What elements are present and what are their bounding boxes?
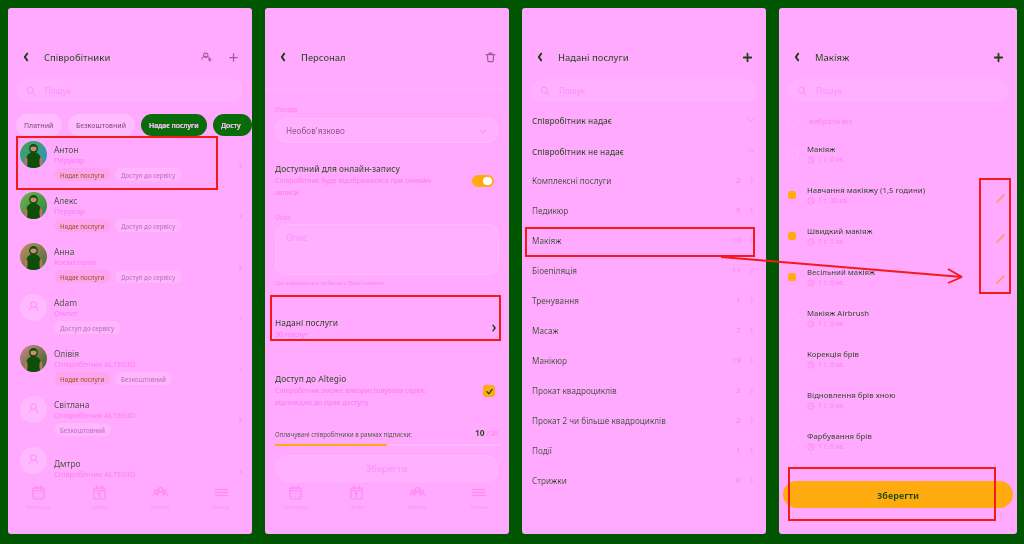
staticText: 0	[736, 475, 741, 486]
button[interactable]: Комплексні послуги	[522, 165, 766, 195]
button[interactable]: Back	[788, 48, 806, 66]
staticText: 1 г. 0 хв.	[818, 155, 845, 164]
button[interactable]: Back	[17, 48, 35, 66]
button[interactable]: Графік	[69, 477, 130, 534]
button[interactable]: Макіяж	[779, 133, 1017, 174]
button[interactable]: Олівія	[8, 344, 252, 395]
button[interactable]: Фарбування брів	[779, 420, 1017, 461]
button[interactable]: Delete	[480, 47, 500, 67]
staticText: Посада	[275, 105, 298, 114]
staticText: Надає послуги	[60, 222, 105, 230]
button[interactable]: Надає послуги	[141, 114, 207, 136]
button[interactable]: Педикюр	[522, 195, 766, 225]
button[interactable]: Календар	[8, 477, 69, 534]
button[interactable]	[472, 175, 494, 187]
button[interactable]: Edit	[994, 273, 1007, 286]
button[interactable]: Співробітник надає	[522, 108, 766, 132]
staticText: Весільний макіяж	[807, 267, 876, 277]
button[interactable]: Edit	[994, 232, 1007, 245]
button[interactable]: Add	[223, 47, 243, 67]
staticText: Події	[532, 445, 736, 456]
staticText: Співробітник ALTEGIO	[54, 359, 136, 369]
button[interactable]: Дмтро	[8, 446, 252, 497]
staticText: Графік	[349, 504, 365, 511]
button[interactable]: Клієнти	[130, 477, 191, 534]
staticText: Опис	[286, 232, 308, 244]
staticText: 1	[736, 445, 741, 456]
staticText: Біоепіляція	[532, 265, 732, 276]
button[interactable]: Тренування	[522, 285, 766, 315]
button[interactable]: Манікюр	[522, 345, 766, 375]
button[interactable]: Стрижки	[522, 465, 766, 495]
button[interactable]: Прокат 2 чи більше квадроциклів	[522, 405, 766, 435]
button[interactable]: Безкоштовний	[68, 114, 135, 136]
staticText: Доступ до сервісу	[60, 324, 115, 332]
button[interactable]: Світлана	[8, 395, 252, 446]
button[interactable]: Графік	[326, 477, 387, 534]
staticText: Більше	[213, 504, 231, 511]
button[interactable]: Макіяж	[522, 225, 766, 255]
button[interactable]: Алекс	[8, 191, 252, 242]
button[interactable]: Корекція брів	[779, 338, 1017, 379]
button[interactable]: Весільний макіяж	[779, 256, 1017, 297]
button[interactable]: Adam	[8, 293, 252, 344]
button[interactable]: Більше	[448, 477, 509, 534]
button[interactable]: Відновлення брів хною	[779, 379, 1017, 420]
button[interactable]: Надані послуги	[265, 306, 509, 349]
button[interactable]: Співробітник не надає	[522, 139, 766, 163]
button[interactable]: Більше	[191, 477, 252, 534]
button[interactable]: Події	[522, 435, 766, 465]
button[interactable]: Зберегти	[275, 455, 499, 482]
button[interactable]: Пошук	[788, 79, 1008, 102]
staticText: Пошук	[45, 85, 72, 96]
staticText: Швидкий макіяж	[807, 226, 873, 236]
staticText: 2	[736, 175, 741, 186]
staticText: 10	[475, 427, 485, 438]
button[interactable]: Антон	[8, 140, 252, 191]
button[interactable]: Add	[988, 47, 1008, 67]
button[interactable]: Зберегти	[783, 481, 1013, 508]
staticText: 11	[732, 265, 741, 276]
button[interactable]: Back	[531, 48, 549, 66]
staticText: Фарбування брів	[807, 431, 872, 441]
staticText: Макіяж Airbrush	[807, 308, 870, 318]
staticText: 1 г. 0 хв.	[818, 319, 845, 328]
button[interactable]: Доступ до сервісу	[213, 114, 252, 136]
staticText: Надає послуги	[60, 273, 105, 281]
staticText: 9	[736, 205, 741, 216]
button[interactable]: Add	[737, 47, 757, 67]
button[interactable]: Масаж	[522, 315, 766, 345]
button[interactable]: Add staff	[196, 47, 216, 67]
button[interactable]: Календар	[265, 477, 326, 534]
button[interactable]: Платний	[16, 114, 62, 136]
button[interactable]: Edit	[994, 192, 1007, 205]
button[interactable]: Біоепіляція	[522, 255, 766, 285]
button[interactable]: Анна	[8, 242, 252, 293]
button[interactable]: Необов'язково	[275, 118, 499, 143]
staticText: Пошук	[816, 85, 843, 96]
button[interactable]: Прокат квадроциклів	[522, 375, 766, 405]
staticText: 1 г. 30 хв.	[818, 196, 849, 205]
staticText: Owner	[54, 308, 79, 318]
button[interactable]: вибрати всі	[779, 109, 1017, 133]
staticText: Тренування	[532, 295, 736, 306]
staticText: Зберегти	[366, 462, 408, 475]
staticText: Комплексні послуги	[532, 175, 736, 186]
staticText: Співробітники	[44, 51, 111, 64]
button[interactable]: Клієнти	[387, 477, 448, 534]
staticText: Безкоштовний	[60, 426, 105, 434]
button[interactable]: Швидкий макіяж	[779, 215, 1017, 256]
button[interactable]: Пошук	[17, 79, 243, 102]
button[interactable]: Навчання макіяжу (1,5 години)	[779, 174, 1017, 215]
button[interactable]: Back	[274, 48, 292, 66]
button[interactable]	[483, 385, 495, 397]
staticText: Персонал	[301, 51, 346, 64]
button[interactable]: Макіяж Airbrush	[779, 297, 1017, 338]
staticText: Зберегти	[877, 489, 920, 501]
staticText: Косметолог	[54, 257, 98, 267]
staticText: Безкоштовний	[76, 121, 127, 130]
staticText: Співробітник зможе використовувати серві…	[275, 386, 455, 407]
button[interactable]: Пошук	[531, 79, 757, 102]
staticText: Опис	[275, 213, 291, 222]
